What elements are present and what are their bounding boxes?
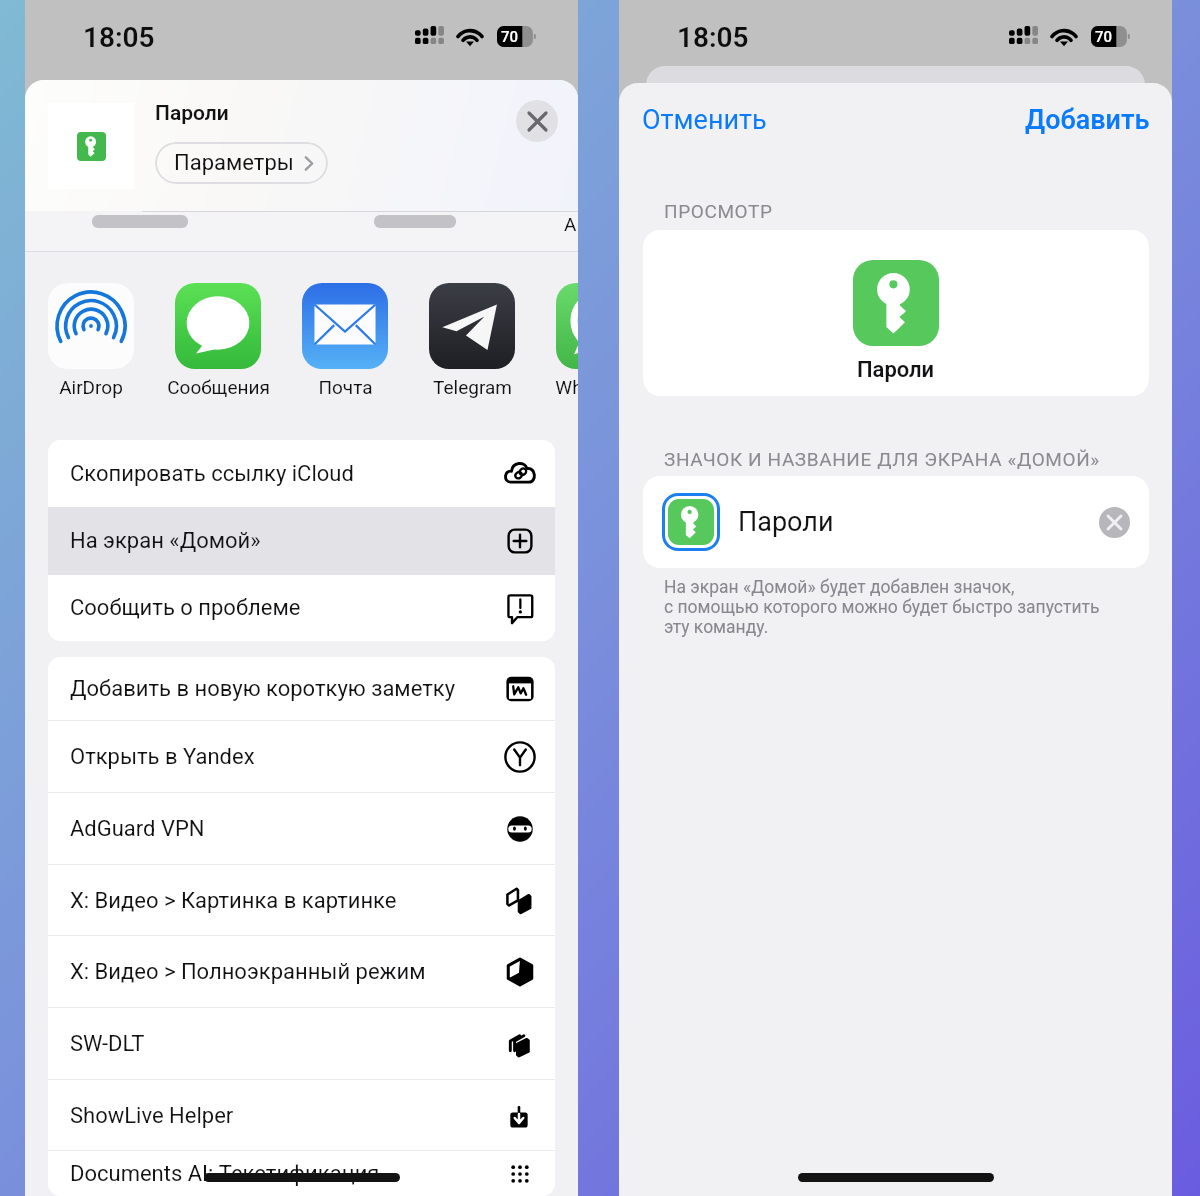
button[interactable]: AdGuard VPN [48, 793, 555, 865]
button[interactable]: Параметры [155, 142, 328, 184]
staticText: Пароли [738, 506, 834, 538]
button[interactable]: WhatsApp [556, 283, 578, 369]
staticText: Сообщить о проблеме [70, 595, 301, 621]
staticText: На экран «Домой» [70, 528, 261, 554]
button[interactable]: AirDrop [48, 283, 134, 369]
staticText: ЗНАЧОК И НАЗВАНИЕ ДЛЯ ЭКРАНА «ДОМОЙ» [664, 448, 1100, 470]
button[interactable]: Пароли [643, 476, 1149, 568]
button[interactable]: Отменить [634, 96, 775, 144]
button[interactable]: ShowLive Helper [48, 1080, 555, 1151]
button[interactable]: Сообщить о проблеме [48, 575, 555, 641]
staticText: 18:05 [677, 21, 749, 54]
staticText: Documents AI: Текстификация [70, 1161, 380, 1187]
staticText: Добавить [1025, 104, 1150, 136]
button[interactable]: Добавить в новую короткую заметку [48, 657, 555, 721]
button[interactable]: Почта [302, 283, 388, 369]
staticText: ПРОСМОТР [664, 200, 773, 222]
staticText: Почта [318, 376, 373, 398]
staticText: Отменить [642, 104, 767, 136]
button[interactable]: SW-DLT [48, 1008, 555, 1080]
button[interactable]: На экран «Домой» [48, 507, 555, 575]
staticText: A [564, 213, 577, 235]
staticText: X: Видео > Полноэкранный режим [70, 959, 426, 985]
button[interactable]: X: Видео > Картинка в картинке [48, 865, 555, 936]
staticText: X: Видео > Картинка в картинке [70, 888, 397, 914]
button[interactable]: X: Видео > Полноэкранный режим [48, 936, 555, 1008]
staticText: 70 [1095, 28, 1113, 46]
button[interactable]: Documents AI: Текстификация [48, 1151, 555, 1196]
staticText: Параметры [174, 150, 294, 176]
staticText: 70 [501, 28, 519, 46]
button[interactable]: Закрыть [516, 100, 558, 142]
button[interactable]: Открыть в Yandex [48, 721, 555, 793]
button[interactable]: Скопировать ссылку iCloud [48, 440, 555, 507]
staticText: AirDrop [59, 376, 123, 398]
staticText: Открыть в Yandex [70, 744, 255, 770]
button[interactable]: Сообщения [175, 283, 261, 369]
staticText: Telegram [433, 376, 512, 398]
staticText: WhatsApp [555, 376, 578, 398]
staticText: ShowLive Helper [70, 1103, 234, 1129]
staticText: AdGuard VPN [70, 816, 205, 842]
button[interactable]: Очистить [1099, 507, 1130, 538]
button[interactable]: Добавить [1017, 96, 1158, 144]
staticText: На экран «Домой» будет добавлен значок, … [664, 577, 1164, 637]
staticText: Добавить в новую короткую заметку [70, 676, 456, 702]
staticText: Пароли [857, 357, 935, 383]
staticText: Пароли [155, 101, 229, 126]
staticText: Скопировать ссылку iCloud [70, 461, 354, 487]
staticText: 18:05 [83, 21, 155, 54]
button[interactable]: Telegram [429, 283, 515, 369]
staticText: SW-DLT [70, 1031, 145, 1057]
staticText: Сообщения [167, 376, 270, 398]
